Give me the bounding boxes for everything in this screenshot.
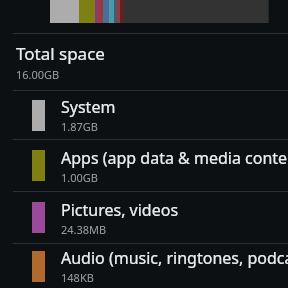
button[interactable]: Audio (music, ringtones, podcasts etc) <box>0 244 288 288</box>
button[interactable]: Total space <box>0 34 288 90</box>
staticText: System <box>61 96 116 118</box>
staticText: 24.38MB <box>61 222 107 237</box>
button[interactable]: Pictures, videos <box>0 192 288 243</box>
button[interactable]: Apps (app data & media content) <box>0 140 288 191</box>
staticText: 1.87GB <box>61 119 98 134</box>
staticText: Audio (music, ringtones, podcasts etc) <box>61 247 288 269</box>
button[interactable]: System <box>0 91 288 139</box>
staticText: Pictures, videos <box>61 199 179 221</box>
staticText: 1.00GB <box>61 170 98 185</box>
staticText: Total space <box>16 42 105 65</box>
staticText: Apps (app data & media content) <box>61 147 288 169</box>
staticText: 148KB <box>61 270 94 285</box>
staticText: 16.00GB <box>16 67 60 82</box>
